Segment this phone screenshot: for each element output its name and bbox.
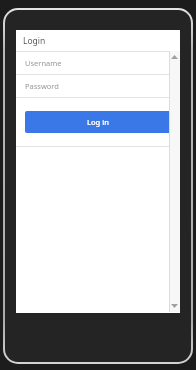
button[interactable]: Password <box>16 75 180 97</box>
staticText: Login <box>23 35 46 47</box>
button[interactable]: Username <box>16 52 180 74</box>
staticText: Log in <box>87 117 109 127</box>
other: Scroll bar <box>169 51 180 312</box>
staticText: Username <box>25 58 62 68</box>
staticText: Password <box>25 81 59 91</box>
button[interactable]: Log in <box>25 111 171 133</box>
